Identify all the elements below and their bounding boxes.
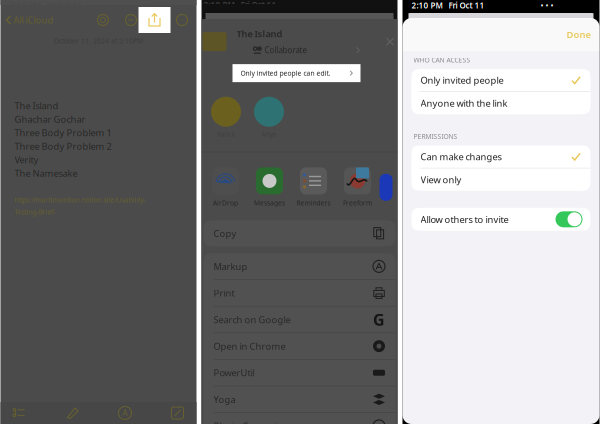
button[interactable]: Anya: [249, 97, 288, 139]
staticText: Done: [566, 28, 590, 41]
staticText: Yoga: [213, 393, 235, 406]
staticText: PERMISSIONS: [413, 132, 457, 141]
button[interactable]: More: [173, 11, 190, 28]
staticText: Only invited people can edit.: [240, 69, 330, 78]
button[interactable]: All iCloud: [0, 9, 57, 31]
button[interactable]: New note: [167, 403, 187, 423]
button[interactable]: Checklist: [8, 403, 29, 423]
staticText: G: [373, 309, 385, 330]
staticText: Fri Oct 11: [448, 0, 484, 11]
button[interactable]: Anyone with the link: [411, 92, 590, 114]
button[interactable]: Open in Chrome: [203, 333, 395, 360]
button[interactable]: Freeform: [335, 167, 379, 207]
staticText: Print: [213, 287, 234, 299]
staticText: Allow others to invite: [420, 213, 508, 225]
staticText: Ghachar Gochar: [14, 113, 85, 125]
staticText: • • •: [139, 1, 152, 9]
staticText: Copy: [213, 227, 236, 240]
button[interactable]: Photo Converter: [203, 413, 395, 424]
button[interactable]: Markup: [115, 403, 134, 422]
button[interactable]: AirDrop: [203, 167, 247, 207]
button[interactable]: New checklist: [122, 11, 139, 28]
staticText: Fri Oct 11: [240, 0, 276, 10]
button[interactable]: Copy: [203, 220, 395, 246]
button[interactable]: Markup: [203, 253, 395, 280]
button[interactable]: Only invited people: [411, 69, 590, 92]
button[interactable]: Search on Google: [203, 307, 395, 333]
staticText: Markup: [213, 260, 247, 273]
staticText: WHO CAN ACCESS: [413, 56, 470, 64]
button[interactable]: Rahul: [206, 97, 245, 139]
button[interactable]: Share: [138, 7, 170, 33]
staticText: October 11, 2024 at 2:10PM: [54, 37, 143, 45]
staticText: The Namesake: [14, 167, 77, 179]
staticText: The Island: [236, 27, 282, 40]
staticText: 2:10 PM: [203, 0, 234, 10]
staticText: Three Body Problem 1: [14, 127, 111, 139]
staticText: • • •: [540, 0, 553, 11]
button[interactable]: Markup: [94, 11, 111, 28]
staticText: Search on Google: [213, 313, 290, 326]
button[interactable]: Can make changes: [411, 145, 590, 168]
button[interactable]: Messages: [247, 167, 291, 207]
staticText: Anya: [261, 130, 276, 139]
staticText: Three Body Problem 2: [14, 140, 111, 152]
staticText: Testing-Brief-: [14, 208, 55, 216]
staticText: https://martinsnotion.notion.site/Usabil…: [14, 196, 145, 204]
button[interactable]: Yoga: [203, 386, 395, 413]
staticText: AirDrop: [213, 198, 238, 207]
button[interactable]: Allow others to invite: [411, 208, 590, 231]
staticText: Collaborate: [264, 45, 307, 55]
staticText: Can make changes: [420, 150, 501, 163]
button[interactable]: Attach: [62, 403, 82, 423]
staticText: Open in Chrome: [213, 340, 285, 352]
staticText: Anyone with the link: [420, 97, 507, 109]
button[interactable]: View only: [411, 168, 590, 191]
staticText: Freeform: [343, 198, 372, 207]
button[interactable]: PowerUtil: [203, 360, 395, 386]
staticText: Only invited people: [420, 74, 503, 86]
button[interactable]: Done: [557, 23, 599, 46]
staticText: A: [122, 408, 127, 418]
button[interactable]: Print: [203, 280, 395, 306]
button[interactable]: Only invited people can edit.: [232, 64, 360, 82]
staticText: Photo Converter: [213, 420, 286, 424]
staticText: Reminders: [296, 198, 330, 207]
staticText: Verity: [14, 154, 38, 166]
staticText: View only: [420, 173, 461, 186]
staticText: All iCloud: [13, 14, 53, 26]
button[interactable]: Close: [380, 32, 399, 51]
staticText: 2:10 PM: [411, 0, 442, 11]
button[interactable]: Reminders: [291, 167, 335, 207]
staticText: Messages: [254, 198, 285, 207]
staticText: The Island: [14, 100, 58, 112]
staticText: PowerUtil: [213, 367, 254, 379]
